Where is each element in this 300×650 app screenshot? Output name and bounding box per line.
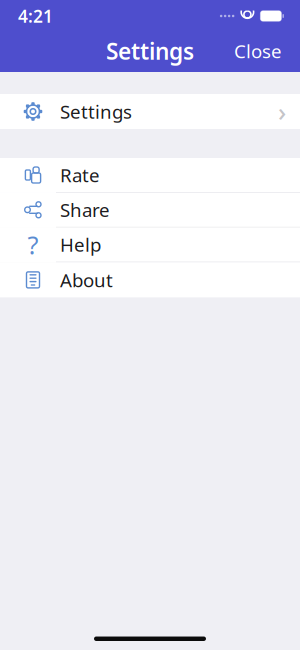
staticText: Settings (60, 99, 132, 124)
staticText: Help (60, 232, 101, 257)
staticText: Settings (106, 36, 194, 66)
staticText: ? (27, 228, 38, 261)
staticText: › (278, 95, 286, 128)
button[interactable]: Settings (0, 94, 300, 129)
button[interactable]: ? (0, 228, 300, 262)
staticText: 4:21 (18, 4, 53, 27)
staticText: Share (60, 197, 110, 222)
button[interactable]: Close (224, 33, 292, 69)
button[interactable]: About (0, 262, 300, 297)
button[interactable]: Share (0, 193, 300, 228)
button[interactable]: Rate (0, 158, 300, 193)
staticText: Rate (60, 163, 100, 187)
staticText: Close (234, 39, 282, 63)
staticText: About (60, 267, 113, 292)
